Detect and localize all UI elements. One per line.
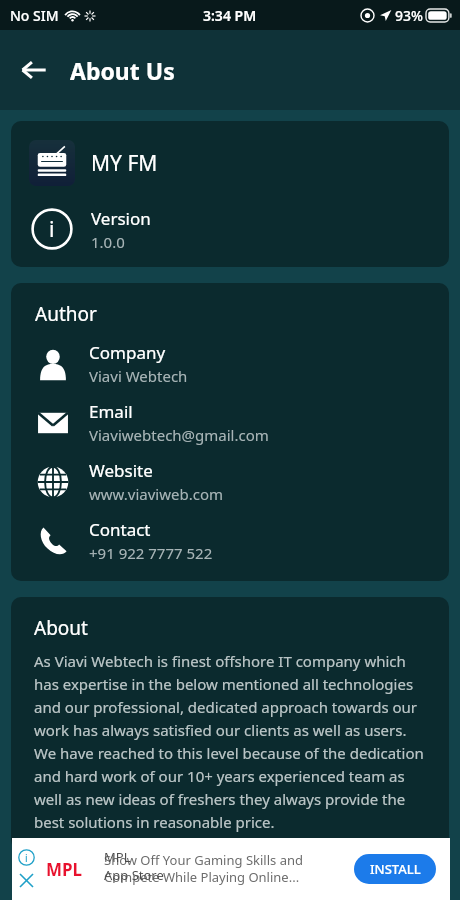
button[interactable]: Website (11, 459, 449, 504)
button[interactable]: Company (11, 341, 449, 386)
staticText: App Store (104, 866, 164, 884)
staticText: MY FM (91, 149, 158, 178)
staticText: i (25, 851, 28, 865)
staticText: 93% (395, 6, 423, 25)
staticText: Viavi Webtech (89, 366, 188, 386)
button[interactable]: Back (12, 48, 56, 92)
staticText: As Viavi Webtech is finest offshore IT c… (34, 651, 429, 832)
staticText: MPL (46, 858, 83, 881)
button[interactable]: Close ad (18, 872, 35, 889)
staticText: Version (91, 207, 151, 230)
staticText: Viaviwebtech@gmail.com (89, 425, 269, 445)
staticText: www.viaviweb.com (89, 484, 223, 504)
staticText: About (34, 615, 88, 641)
staticText: Website (89, 459, 153, 482)
staticText: Company (89, 341, 166, 364)
button[interactable]: INSTALL (354, 854, 436, 884)
staticText: Contact (89, 518, 151, 541)
button[interactable]: i (11, 206, 449, 252)
staticText: Author (35, 301, 97, 327)
button[interactable]: MY FM (11, 136, 449, 190)
staticText: MPL (104, 848, 131, 866)
button[interactable]: Ad info (18, 849, 35, 866)
staticText: INSTALL (370, 860, 421, 878)
staticText: 3:34 PM (203, 6, 257, 25)
button[interactable]: Email (11, 400, 449, 445)
staticText: About Us (70, 55, 175, 86)
staticText: 1.0.0 (91, 232, 125, 252)
button[interactable]: Contact (11, 518, 449, 563)
staticText: Show Off Your Gaming Skills and Compete … (104, 851, 319, 886)
staticText: No SIM (10, 6, 59, 25)
staticText: i (49, 215, 55, 244)
staticText: +91 922 7777 522 (89, 543, 213, 563)
staticText: Email (89, 400, 133, 423)
